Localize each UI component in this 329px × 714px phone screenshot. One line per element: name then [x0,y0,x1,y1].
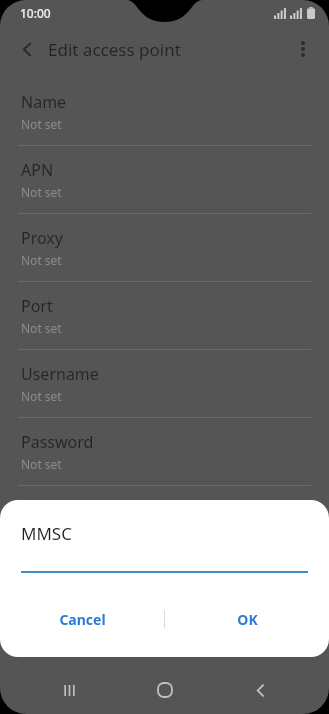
staticText: Not set [21,456,62,472]
button[interactable]: Name [0,78,329,145]
staticText: Not set [21,524,62,540]
staticText: Cancel [59,610,106,629]
staticText: Server [21,499,70,521]
staticText: Edit access point [48,38,181,61]
staticText: Username [21,363,99,385]
button[interactable]: Server [0,486,329,553]
button[interactable]: Recent apps [43,666,95,714]
staticText: Not set [21,116,62,132]
button[interactable]: Cancel [0,601,164,637]
staticText: Port [21,295,53,317]
staticText: APN [21,159,54,181]
staticText: Not set [21,184,62,200]
button[interactable]: Back [234,666,286,714]
staticText: OK [237,610,258,629]
button[interactable]: Password [0,418,329,485]
staticText: MMSC [21,522,72,545]
button[interactable]: Back [10,32,44,66]
staticText: Not set [21,320,62,336]
staticText: Name [21,91,67,113]
staticText: Password [21,431,94,453]
staticText: Not set [21,252,62,268]
staticText: 10:00 [20,5,51,21]
button[interactable]: APN [0,146,329,213]
button[interactable]: Username [0,350,329,417]
button[interactable]: More options [285,31,321,67]
button[interactable]: Port [0,282,329,349]
staticText: Not set [21,388,62,404]
staticText: Proxy [21,227,63,249]
button[interactable]: Home [139,666,191,714]
button[interactable]: OK [165,601,329,637]
button[interactable]: Proxy [0,214,329,281]
